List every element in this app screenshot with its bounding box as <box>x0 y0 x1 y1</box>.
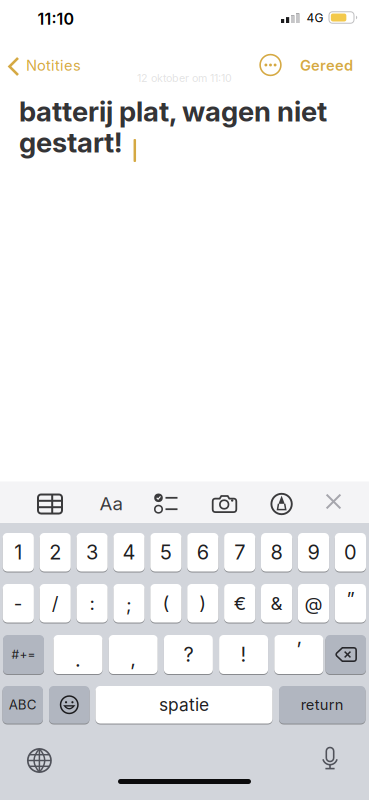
staticText: € <box>234 592 246 614</box>
staticText: 2 <box>49 540 61 564</box>
button[interactable]: ” <box>335 584 366 622</box>
staticText: 6 <box>197 540 209 564</box>
button[interactable]: @ <box>298 584 329 622</box>
button[interactable]: 8 <box>261 533 292 571</box>
staticText: 11:10 <box>37 10 74 28</box>
button[interactable]: More options <box>259 53 282 76</box>
button[interactable]: #+= <box>3 635 44 674</box>
staticText: : <box>90 592 95 614</box>
staticText: 5 <box>160 540 172 564</box>
staticText: gestart! <box>19 126 122 159</box>
button[interactable]: Insert table <box>38 494 62 513</box>
staticText: , <box>130 647 136 671</box>
button[interactable]: 0 <box>335 533 366 571</box>
button[interactable]: Emoji <box>49 686 89 723</box>
button[interactable]: - <box>3 584 34 622</box>
button[interactable]: ! <box>219 635 268 674</box>
staticText: . <box>75 648 81 671</box>
button[interactable]: Dismiss keyboard tools <box>326 494 341 509</box>
button[interactable]: ; <box>113 584 145 622</box>
staticText: ; <box>126 594 132 616</box>
button[interactable]: 4 <box>113 533 145 571</box>
staticText: ! <box>241 643 247 666</box>
button[interactable]: , <box>109 635 158 674</box>
button[interactable]: 6 <box>187 533 218 571</box>
staticText: 4G <box>306 11 323 25</box>
button[interactable]: 1 <box>3 533 34 571</box>
staticText: 4 <box>122 540 135 564</box>
staticText: - <box>14 592 23 614</box>
button[interactable]: Back to Notities <box>8 51 90 79</box>
button[interactable]: / <box>40 584 71 622</box>
staticText: Notities <box>26 57 81 74</box>
button[interactable]: Checklist <box>153 493 177 514</box>
button[interactable]: Gereed <box>300 57 353 74</box>
staticText: 12 oktober om 11:10 <box>137 72 232 84</box>
staticText: spatie <box>159 694 209 715</box>
button[interactable]: ? <box>164 635 213 674</box>
button[interactable]: spatie <box>95 686 272 723</box>
staticText: 8 <box>271 540 283 564</box>
staticText: ? <box>183 643 193 666</box>
button[interactable]: Markup <box>271 493 293 515</box>
button[interactable]: Next keyboard <box>26 747 52 773</box>
staticText: / <box>52 592 59 614</box>
button[interactable]: 7 <box>224 533 255 571</box>
button[interactable]: 5 <box>150 533 181 571</box>
staticText: batterij plat, wagen niet <box>19 95 327 128</box>
staticText: 9 <box>307 540 319 564</box>
button[interactable]: return <box>279 686 365 723</box>
staticText: & <box>271 592 283 614</box>
staticText: return <box>301 696 344 713</box>
staticText: 3 <box>86 540 98 564</box>
button[interactable]: 2 <box>40 533 71 571</box>
button[interactable]: ABC <box>2 686 43 723</box>
button[interactable]: & <box>261 584 292 622</box>
staticText: @ <box>304 592 322 614</box>
button[interactable]: ’ <box>274 635 323 674</box>
button[interactable]: Dictate <box>321 747 339 771</box>
button[interactable]: Delete <box>325 635 366 674</box>
staticText: 1 <box>14 540 22 564</box>
button[interactable]: € <box>224 584 255 622</box>
staticText: 7 <box>234 540 245 564</box>
staticText: ’ <box>296 637 301 661</box>
staticText: ) <box>199 592 206 614</box>
staticText: 0 <box>344 540 357 564</box>
button[interactable]: Format <box>99 492 122 514</box>
button[interactable]: Insert photo <box>212 494 236 514</box>
button[interactable]: . <box>53 635 102 674</box>
button[interactable]: : <box>76 584 108 622</box>
button[interactable]: ) <box>187 584 218 622</box>
staticText: ( <box>162 592 169 614</box>
staticText: Gereed <box>300 57 353 74</box>
staticText: ” <box>346 587 354 609</box>
staticText: ABC <box>9 697 37 713</box>
button[interactable]: 3 <box>76 533 108 571</box>
button[interactable]: ( <box>150 584 181 622</box>
button[interactable]: 9 <box>298 533 329 571</box>
staticText: #+= <box>11 647 35 662</box>
staticText: Aa <box>99 492 122 514</box>
